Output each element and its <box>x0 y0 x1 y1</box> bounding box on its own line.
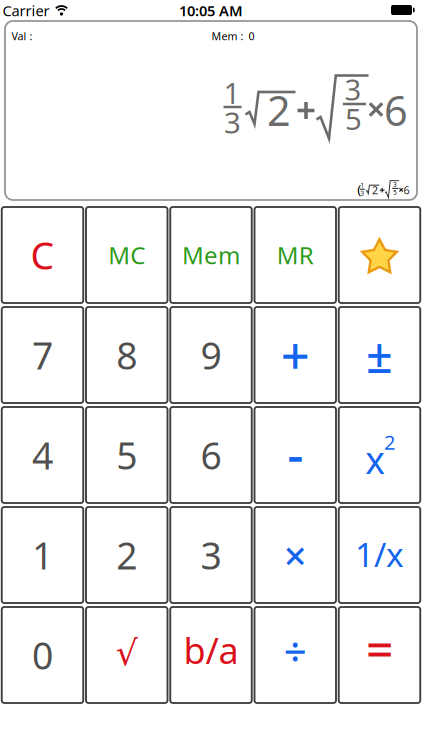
button[interactable]: 3 <box>170 507 252 603</box>
staticText: + <box>281 321 310 389</box>
button[interactable]: x <box>339 407 420 503</box>
button[interactable]: 2 <box>86 507 167 603</box>
staticText: 3 <box>224 102 241 141</box>
staticText: 0 <box>248 29 254 43</box>
staticText: × <box>284 528 307 581</box>
staticText: - <box>287 419 303 487</box>
staticText: 1/x <box>355 532 404 576</box>
button[interactable]: Favorites <box>339 207 420 303</box>
staticText: 3 <box>344 69 361 108</box>
staticText: 10:05 AM <box>179 1 243 20</box>
staticText: C <box>30 230 54 280</box>
staticText: = <box>366 616 393 680</box>
staticText: 6 <box>200 430 221 480</box>
staticText: MC <box>108 239 145 271</box>
staticText: 2 <box>372 183 378 197</box>
staticText: 1 <box>360 181 364 190</box>
button[interactable]: 1/x <box>339 507 420 603</box>
button[interactable]: 5 <box>86 407 167 503</box>
staticText: ( <box>357 180 361 198</box>
button[interactable]: 0 <box>2 607 83 703</box>
button[interactable]: Mem <box>170 207 252 303</box>
button[interactable]: - <box>254 407 336 503</box>
staticText: Val : <box>11 29 32 43</box>
staticText: Mem : <box>211 29 243 43</box>
staticText: 2 <box>384 429 395 455</box>
staticText: ÷ <box>284 624 307 677</box>
staticText: 5 <box>393 188 397 197</box>
button[interactable]: MC <box>86 207 167 303</box>
button[interactable]: C <box>2 207 83 303</box>
staticText: 4 <box>32 430 53 480</box>
staticText: 8 <box>116 330 137 380</box>
staticText: 0 <box>32 630 53 680</box>
staticText: 2 <box>116 530 137 580</box>
button[interactable]: 4 <box>2 407 83 503</box>
staticText: ± <box>366 324 393 386</box>
button[interactable]: b/a <box>170 607 252 703</box>
button[interactable]: = <box>339 607 420 703</box>
staticText: 3 <box>393 180 397 189</box>
staticText: √ <box>116 633 138 673</box>
button[interactable]: ± <box>339 307 420 403</box>
staticText: 1 <box>223 73 240 112</box>
staticText: x <box>365 435 385 484</box>
staticText: MR <box>277 239 314 271</box>
button[interactable]: × <box>254 507 336 603</box>
button[interactable]: 1 <box>2 507 83 603</box>
staticText: 5 <box>345 99 362 138</box>
staticText: 2 <box>267 83 291 137</box>
button[interactable]: 8 <box>86 307 167 403</box>
button[interactable]: 7 <box>2 307 83 403</box>
button[interactable]: MR <box>254 207 336 303</box>
staticText: 5 <box>116 430 137 480</box>
button[interactable]: 6 <box>170 407 252 503</box>
staticText: 6 <box>403 183 409 197</box>
staticText: 6 <box>384 83 408 137</box>
staticText: 7 <box>32 330 53 380</box>
staticText: 3 <box>360 189 364 198</box>
staticText: b/a <box>183 626 238 674</box>
staticText: 9 <box>200 330 221 380</box>
staticText: 1 <box>32 530 53 580</box>
button[interactable]: ÷ <box>254 607 336 703</box>
staticText: Mem <box>182 239 240 271</box>
staticText: 3 <box>200 530 221 580</box>
button[interactable]: √ <box>86 607 167 703</box>
button[interactable]: 9 <box>170 307 252 403</box>
staticText: Carrier <box>2 1 49 20</box>
button[interactable]: + <box>254 307 336 403</box>
